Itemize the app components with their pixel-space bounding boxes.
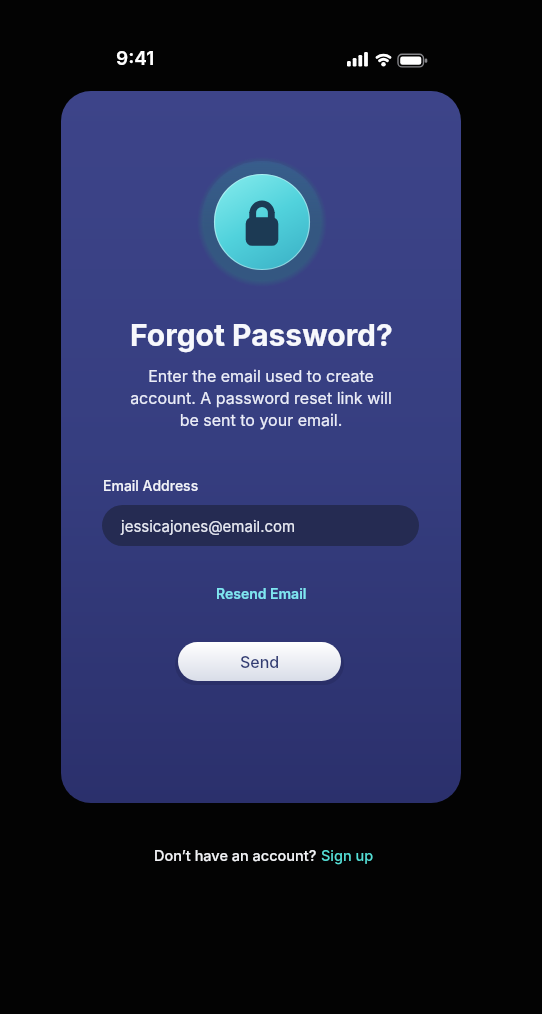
- staticText: Email Address: [103, 477, 199, 494]
- button[interactable]: jessicajones@email.com: [102, 505, 419, 546]
- staticText: Sign up: [321, 847, 374, 865]
- staticText: Resend Email: [216, 585, 307, 602]
- button[interactable]: Sign up: [321, 847, 374, 865]
- staticText: Send: [240, 652, 280, 671]
- staticText: 9:41: [116, 47, 155, 70]
- staticText: Forgot Password?: [130, 317, 393, 353]
- staticText: Don’t have an account?: [154, 847, 321, 865]
- button[interactable]: Resend Email: [216, 585, 307, 602]
- staticText: jessicajones@email.com: [121, 517, 296, 535]
- button[interactable]: Send: [178, 642, 341, 681]
- staticText: Enter the email used to create account. …: [130, 366, 392, 430]
